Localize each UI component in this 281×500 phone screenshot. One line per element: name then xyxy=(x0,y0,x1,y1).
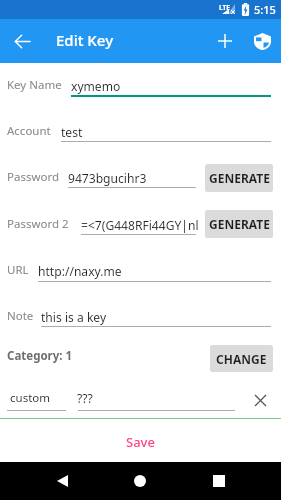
staticText: this is a key xyxy=(41,309,107,325)
button[interactable]: Clear xyxy=(248,388,273,413)
staticText: 9473bgucihr3 xyxy=(68,170,147,186)
staticText: GENERATE xyxy=(209,216,270,232)
button[interactable]: Add xyxy=(211,27,239,55)
staticText: Save xyxy=(126,433,155,451)
button[interactable]: Back xyxy=(45,464,79,498)
staticText: 5:15 xyxy=(254,2,276,17)
button[interactable]: Security xyxy=(248,27,276,55)
button[interactable]: GENERATE xyxy=(205,210,273,238)
staticText: custom xyxy=(10,390,50,406)
staticText: =<7(G448RFi44GY|nl xyxy=(81,217,199,233)
button[interactable]: GENERATE xyxy=(205,164,273,192)
staticText: Account xyxy=(7,123,51,139)
button[interactable]: CHANGE xyxy=(210,345,273,372)
staticText: Password xyxy=(7,169,60,185)
staticText: xymemo xyxy=(71,78,121,94)
staticText: Password 2 xyxy=(7,216,69,232)
staticText: LTE xyxy=(219,3,230,12)
button[interactable]: Recent apps xyxy=(202,464,236,498)
staticText: Category: 1 xyxy=(7,348,73,364)
staticText: Edit Key xyxy=(56,30,114,50)
staticText: http://naxy.me xyxy=(38,263,122,279)
button[interactable]: Home xyxy=(123,464,157,498)
staticText: GENERATE xyxy=(209,170,270,186)
staticText: Note xyxy=(7,308,34,324)
staticText: Key Name xyxy=(7,77,62,93)
button[interactable]: Navigate up xyxy=(8,27,36,55)
staticText: CHANGE xyxy=(216,351,267,367)
staticText: test xyxy=(61,124,83,140)
staticText: URL xyxy=(7,262,29,278)
button[interactable]: Save xyxy=(100,429,181,455)
staticText: ??? xyxy=(77,390,93,406)
